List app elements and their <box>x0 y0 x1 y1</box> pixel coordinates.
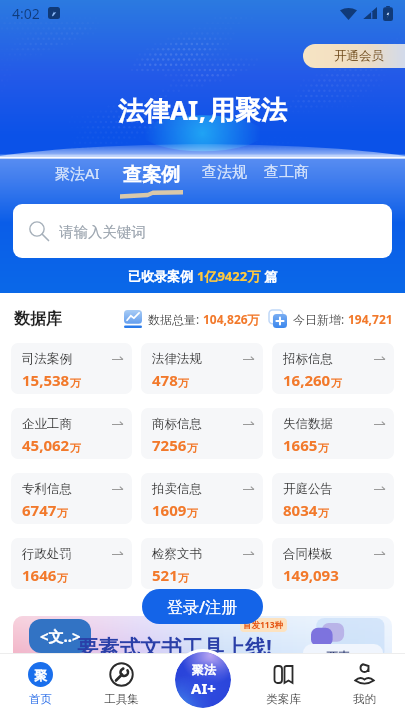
staticText: 请输入关键词 <box>59 223 146 241</box>
staticText: 拍卖信息 <box>152 481 202 497</box>
staticText: 失信数据 <box>283 416 333 432</box>
staticText: 7256 <box>152 435 187 455</box>
button[interactable]: 我的 <box>324 662 405 721</box>
button[interactable]: 检察文书 <box>141 538 263 589</box>
button[interactable]: <文..> <box>13 616 392 692</box>
button[interactable]: 行政处罚 <box>11 538 132 589</box>
staticText: 万 <box>70 376 81 390</box>
staticText: 521 <box>152 565 178 585</box>
staticText: 查法规 <box>202 163 247 182</box>
button[interactable]: 类案库 <box>243 662 324 721</box>
button[interactable]: 查案例 <box>120 163 183 199</box>
staticText: 478 <box>152 370 178 390</box>
staticText: 聚法AI <box>55 163 100 183</box>
staticText: 司法案例 <box>22 351 72 367</box>
staticText: 开通会员 <box>334 48 384 64</box>
staticText: 万 <box>318 506 329 520</box>
button[interactable]: 查工商 <box>264 163 309 182</box>
button[interactable]: 合同模板 <box>272 538 394 589</box>
staticText: 149,093 <box>283 565 339 585</box>
button[interactable]: 聚法 AI <box>175 652 231 708</box>
staticText: <文..> <box>40 626 81 646</box>
staticText: 万 <box>57 571 68 585</box>
staticText: 104,826万 <box>203 311 260 327</box>
staticText: 万 <box>187 506 198 520</box>
button[interactable]: 登录/注册 <box>142 589 263 624</box>
staticText: 招标信息 <box>283 351 333 367</box>
staticText: 聚法 <box>192 662 216 677</box>
staticText: 数据库 <box>14 309 62 329</box>
staticText: 数据总量: <box>148 311 203 327</box>
button[interactable]: 法律法规 <box>141 343 263 394</box>
staticText: 工具集 <box>104 692 139 706</box>
button[interactable]: 招标信息 <box>272 343 394 394</box>
staticText: 要素→ <box>326 649 361 664</box>
staticText: AI+ <box>191 678 216 698</box>
staticText: 合同模板 <box>283 546 333 562</box>
staticText: 今日新增: <box>293 311 348 327</box>
staticText: 查工商 <box>264 163 309 182</box>
staticText: 15,538 <box>22 370 70 390</box>
button[interactable]: 工具集 <box>81 662 162 721</box>
staticText: 首页 <box>29 692 52 706</box>
staticText: 1609 <box>152 500 187 520</box>
staticText: 万 <box>178 571 189 585</box>
staticText: 用聚法 <box>209 94 287 127</box>
staticText: 已收录案例 <box>128 267 197 285</box>
staticText: 1665 <box>283 435 318 455</box>
staticText: 1646 <box>22 565 57 585</box>
button[interactable]: 开通会员 <box>303 44 405 68</box>
staticText: 万 <box>57 506 68 520</box>
staticText: 8034 <box>283 500 318 520</box>
staticText: 聚 <box>34 667 47 683</box>
staticText: 专利信息 <box>22 481 72 497</box>
button[interactable]: 查法规 <box>202 163 247 182</box>
button[interactable]: 司法案例 <box>11 343 132 394</box>
button[interactable]: 开庭公告 <box>272 473 394 524</box>
staticText: 要素式文书工具上线! <box>77 633 272 662</box>
staticText: 45,062 <box>22 435 70 455</box>
button[interactable]: 企业工商 <box>11 408 132 459</box>
staticText: 行政处罚 <box>22 546 72 562</box>
staticText: 开庭公告 <box>283 481 333 497</box>
staticText: 登录/注册 <box>167 596 238 618</box>
staticText: 万 <box>178 376 189 390</box>
button[interactable]: 聚 <box>0 662 81 721</box>
staticText: 万 <box>331 376 342 390</box>
button[interactable]: 专利信息 <box>11 473 132 524</box>
staticText: 194,721 <box>348 311 393 327</box>
button[interactable]: 商标信息 <box>141 408 263 459</box>
staticText: 篇 <box>261 267 278 285</box>
staticText: 万 <box>70 441 81 455</box>
button[interactable]: 聚法AI <box>55 163 100 183</box>
staticText: 企业工商 <box>22 416 72 432</box>
staticText: 法律法规 <box>152 351 202 367</box>
staticText: 类案库 <box>266 692 301 706</box>
staticText: 商标信息 <box>152 416 202 432</box>
staticText: 4:02 <box>12 4 40 23</box>
staticText: 检察文书 <box>152 546 202 562</box>
staticText: , <box>199 94 206 127</box>
staticText: 1亿9422万 <box>197 267 261 285</box>
button[interactable]: 请输入关键词 <box>13 204 392 258</box>
staticText: 16,260 <box>283 370 331 390</box>
button[interactable]: 拍卖信息 <box>141 473 263 524</box>
staticText: 万 <box>318 441 329 455</box>
staticText: 首发113种 <box>243 619 284 631</box>
staticText: 万 <box>187 441 198 455</box>
staticText: 6747 <box>22 500 57 520</box>
staticText: 我的 <box>353 692 376 706</box>
button[interactable]: 失信数据 <box>272 408 394 459</box>
staticText: 法律AI <box>118 92 199 128</box>
staticText: 查案例 <box>123 163 180 187</box>
